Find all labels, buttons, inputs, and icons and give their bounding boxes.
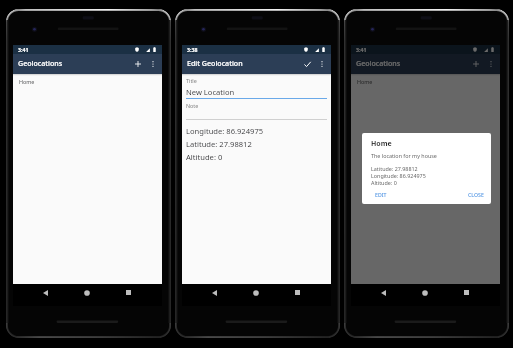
staticText: The location for my house <box>371 152 437 159</box>
staticText: Home <box>371 139 392 149</box>
staticText: Title <box>186 77 197 84</box>
staticText: 3:41 <box>356 46 367 53</box>
staticText: Latitude: 27.98812 <box>186 139 252 149</box>
button[interactable]: Home <box>77 284 97 301</box>
button[interactable]: Recent apps <box>456 284 476 301</box>
button[interactable]: Save <box>302 54 312 74</box>
staticText: 3:41 <box>18 46 29 53</box>
staticText: Altitude: 0 <box>371 179 397 186</box>
button[interactable]: More options <box>144 54 162 74</box>
button[interactable]: Home <box>13 74 162 89</box>
button[interactable]: Home <box>415 284 435 301</box>
staticText: Longitude: 86.924975 <box>186 126 264 136</box>
staticText: Home <box>19 78 35 85</box>
button[interactable]: Recent apps <box>118 284 138 301</box>
staticText: Latitude: 27.98812 <box>371 165 418 172</box>
staticText: Edit Geolocation <box>187 58 243 68</box>
button[interactable]: EDIT <box>374 191 388 198</box>
staticText: EDIT <box>375 191 387 198</box>
button[interactable]: Add <box>133 54 143 74</box>
button[interactable]: Home <box>246 284 266 301</box>
staticText: New Location <box>186 87 235 97</box>
button[interactable]: Recent apps <box>287 284 307 301</box>
button[interactable]: Back <box>204 284 224 301</box>
button[interactable]: CLOSE <box>467 191 485 198</box>
staticText: 3:38 <box>187 46 198 53</box>
button[interactable]: More options <box>482 54 500 74</box>
button[interactable]: Add <box>471 54 481 74</box>
staticText: Longitude: 86.924975 <box>371 172 426 179</box>
staticText: Note <box>186 102 199 109</box>
staticText: Altitude: 0 <box>186 152 223 162</box>
staticText: CLOSE <box>468 191 484 198</box>
button[interactable]: Back <box>373 284 393 301</box>
staticText: Geolocations <box>356 58 401 68</box>
button[interactable]: More options <box>313 54 331 74</box>
button[interactable]: Back <box>35 284 55 301</box>
staticText: Home <box>357 78 373 85</box>
staticText: Geolocations <box>18 58 63 68</box>
